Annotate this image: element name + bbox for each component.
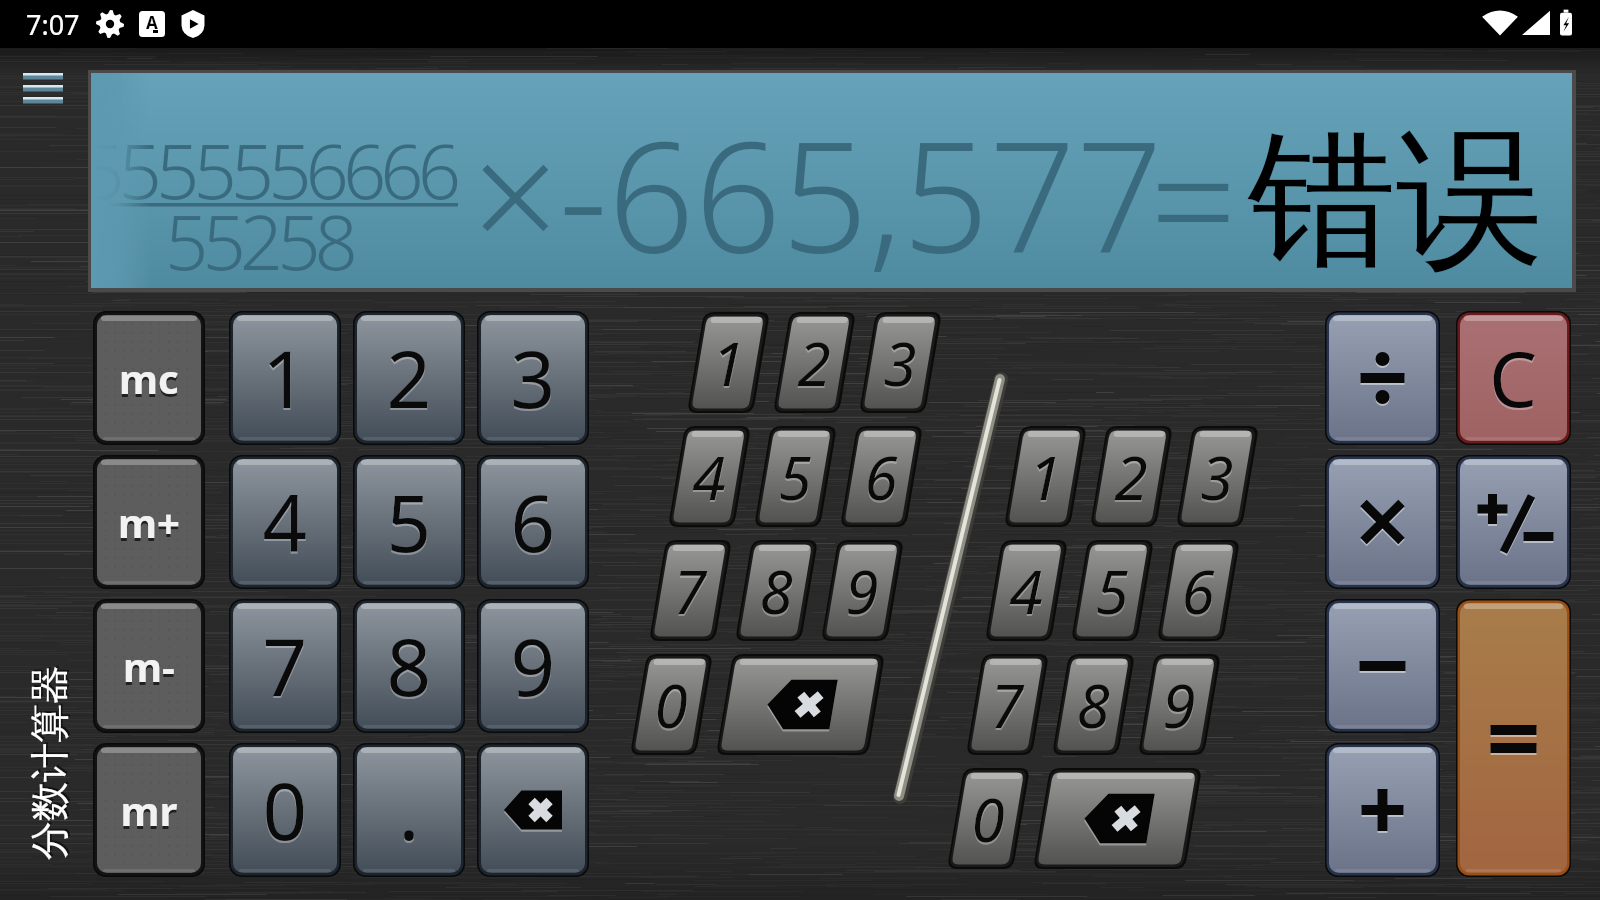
button[interactable]: 3 xyxy=(477,311,589,445)
button[interactable]: Denominator 7 xyxy=(974,654,1040,755)
button[interactable]: Memory add xyxy=(93,455,205,589)
button[interactable]: Denominator 2 xyxy=(1098,426,1164,527)
button[interactable]: 5 xyxy=(353,455,465,589)
button[interactable]: Equals xyxy=(1456,599,1571,877)
button[interactable]: Divide xyxy=(1325,311,1440,445)
button[interactable]: Denominator 0 xyxy=(955,768,1021,869)
button[interactable]: Minus xyxy=(1325,599,1440,733)
button[interactable]: Numerator 2 xyxy=(781,312,847,413)
button[interactable]: Denominator 6 xyxy=(1165,540,1231,641)
button[interactable]: Denominator 5 xyxy=(1079,540,1145,641)
button[interactable]: Numerator 0 xyxy=(638,654,704,755)
button[interactable]: Denominator 3 xyxy=(1184,426,1250,527)
button[interactable]: Numerator 1 xyxy=(695,312,761,413)
button[interactable]: Backspace xyxy=(477,743,589,877)
button[interactable]: Numerator 8 xyxy=(743,540,809,641)
button[interactable]: 7 xyxy=(229,599,341,733)
button[interactable]: Denominator 1 xyxy=(1012,426,1078,527)
button[interactable]: Multiply xyxy=(1325,455,1440,589)
button[interactable]: Expression display xyxy=(88,70,1576,292)
button[interactable]: Menu xyxy=(14,64,74,112)
button[interactable]: Memory recall xyxy=(93,743,205,877)
button[interactable]: Clear xyxy=(1456,311,1571,445)
button[interactable]: 2 xyxy=(353,311,465,445)
button[interactable]: Numerator 4 xyxy=(676,426,742,527)
button[interactable]: 0 xyxy=(229,743,341,877)
button[interactable]: Denominator backspace xyxy=(1041,768,1193,869)
button[interactable]: Numerator 3 xyxy=(867,312,933,413)
button[interactable]: 9 xyxy=(477,599,589,733)
button[interactable]: Denominator 8 xyxy=(1060,654,1126,755)
button[interactable]: Plus or minus xyxy=(1456,455,1571,589)
button[interactable]: Memory subtract xyxy=(93,599,205,733)
button[interactable]: Denominator 4 xyxy=(993,540,1059,641)
button[interactable]: Memory clear xyxy=(93,311,205,445)
button[interactable]: Numerator backspace xyxy=(724,654,876,755)
button[interactable]: 8 xyxy=(353,599,465,733)
button[interactable]: 6 xyxy=(477,455,589,589)
button[interactable]: Numerator 5 xyxy=(762,426,828,527)
button[interactable]: 1 xyxy=(229,311,341,445)
button[interactable]: Plus xyxy=(1325,743,1440,877)
button[interactable]: Numerator 7 xyxy=(657,540,723,641)
button[interactable]: Numerator 9 xyxy=(829,540,895,641)
button[interactable]: 4 xyxy=(229,455,341,589)
button[interactable]: Numerator 6 xyxy=(848,426,914,527)
button[interactable]: Denominator 9 xyxy=(1146,654,1212,755)
button[interactable]: . xyxy=(353,743,465,877)
